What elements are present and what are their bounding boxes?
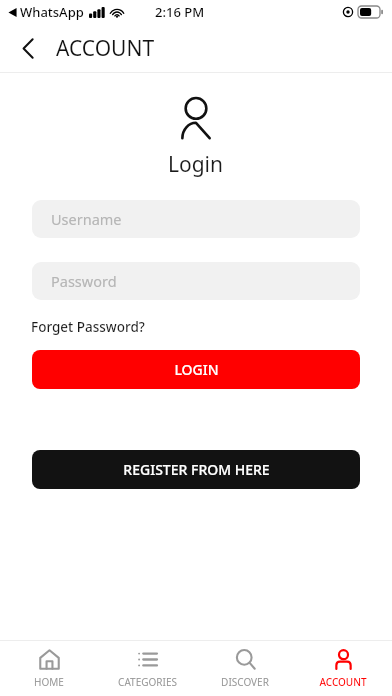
button[interactable]: HOME <box>0 643 98 695</box>
staticText: 2:16 PM <box>155 3 205 21</box>
staticText: ACCOUNT <box>319 675 367 689</box>
staticText: REGISTER FROM HERE <box>123 460 270 479</box>
button[interactable]: Forget Password? <box>31 318 145 336</box>
button[interactable]: LOGIN <box>32 350 360 389</box>
staticText: DISCOVER <box>221 675 269 689</box>
staticText: HOME <box>34 675 64 689</box>
staticText: Username <box>51 209 122 229</box>
staticText: Login <box>168 150 224 179</box>
button[interactable]: Username <box>32 200 360 238</box>
staticText: CATEGORIES <box>118 675 177 689</box>
staticText: LOGIN <box>174 360 219 379</box>
button[interactable]: ACCOUNT <box>294 643 392 695</box>
button[interactable]: REGISTER FROM HERE <box>32 450 360 489</box>
button[interactable]: CATEGORIES <box>98 643 196 695</box>
staticText: ACCOUNT <box>56 34 155 63</box>
button[interactable]: Back <box>10 30 46 66</box>
staticText: Password <box>51 271 117 291</box>
staticText: WhatsApp <box>20 3 84 21</box>
button[interactable]: Password <box>32 262 360 300</box>
button[interactable]: DISCOVER <box>196 643 294 695</box>
